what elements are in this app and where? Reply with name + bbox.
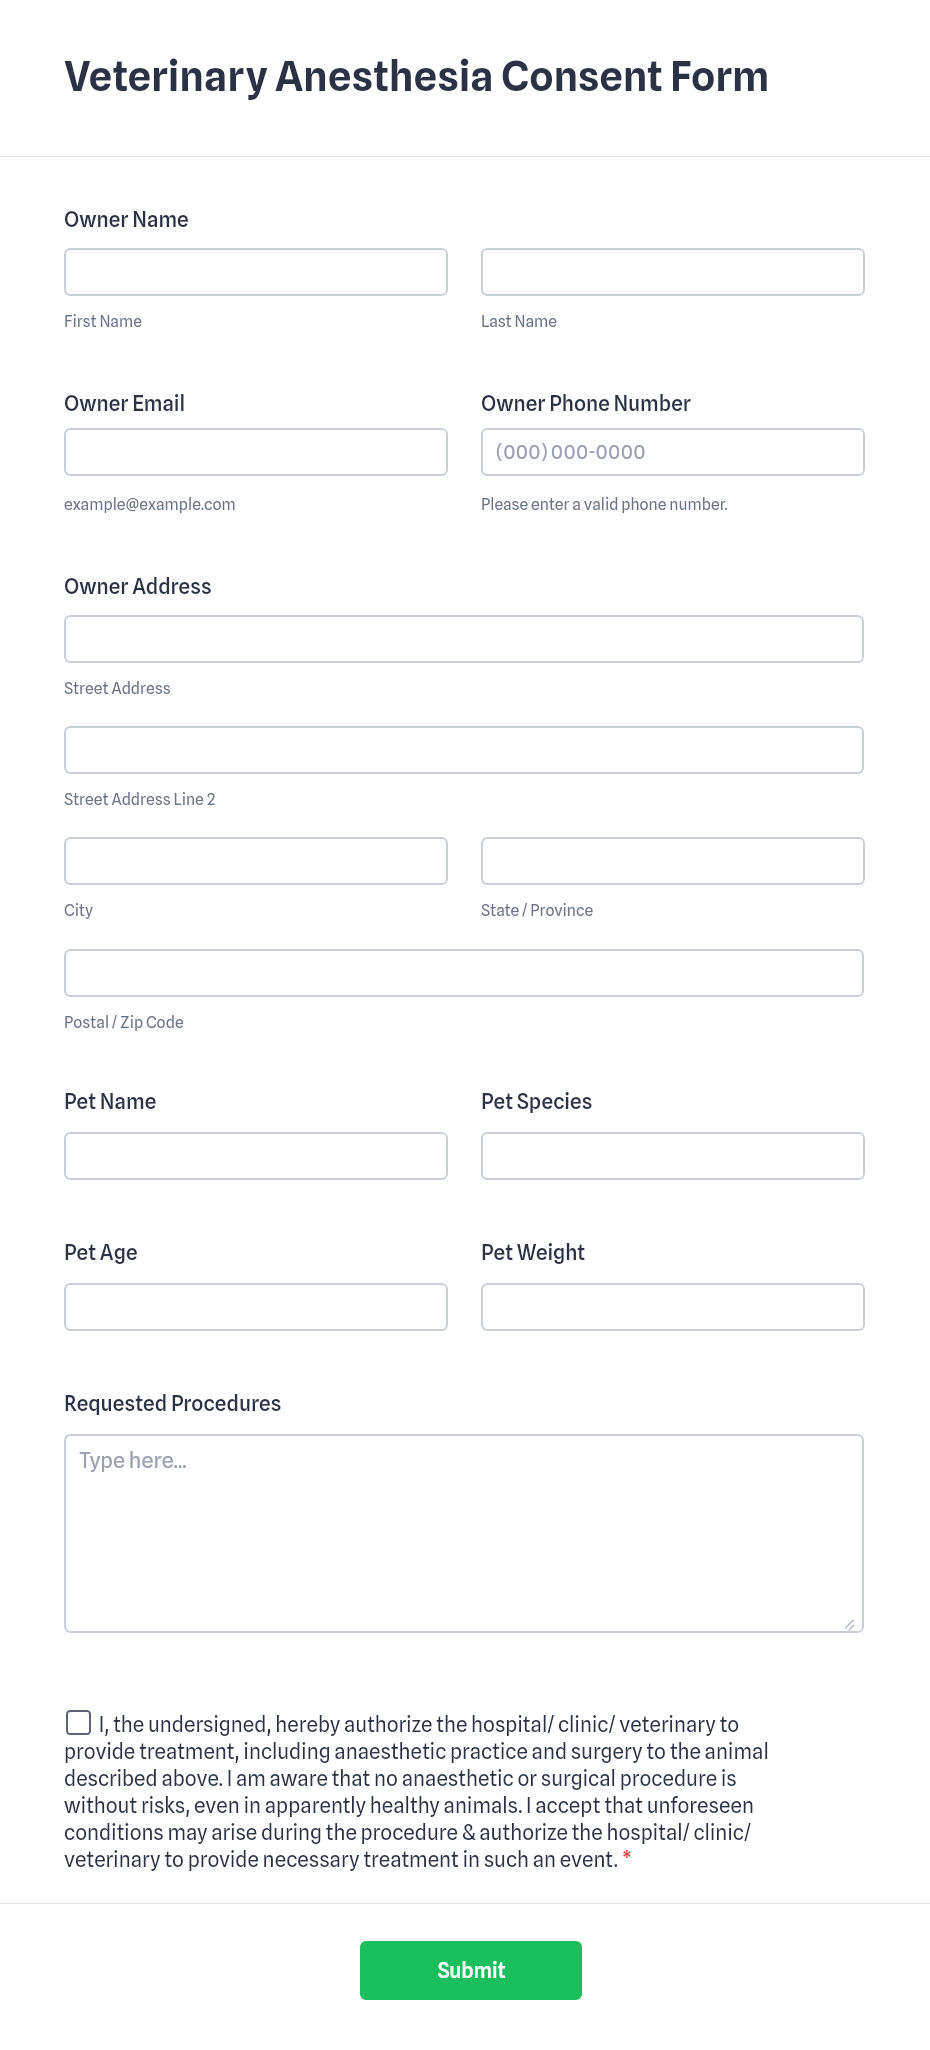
button[interactable] xyxy=(64,1283,448,1331)
staticText: Last Name xyxy=(481,312,558,331)
button[interactable] xyxy=(64,837,448,885)
button[interactable] xyxy=(64,428,448,476)
button[interactable] xyxy=(481,1283,865,1331)
staticText: Pet Weight xyxy=(481,1240,586,1265)
staticText: Pet Name xyxy=(64,1089,157,1114)
button[interactable] xyxy=(481,248,865,296)
button[interactable]: (000) 000-0000 xyxy=(481,428,865,476)
button[interactable]: Type here... xyxy=(64,1434,864,1633)
staticText: State / Province xyxy=(481,901,594,920)
staticText: Submit xyxy=(437,1958,506,1983)
staticText: Owner Phone Number xyxy=(481,391,692,416)
staticText: Street Address xyxy=(64,679,171,698)
staticText: Street Address Line 2 xyxy=(64,790,216,809)
button[interactable]: I agree checkbox xyxy=(66,1710,91,1735)
staticText: Type here... xyxy=(79,1447,187,1473)
button[interactable] xyxy=(64,1132,448,1180)
staticText: I, the undersigned, hereby authorize the… xyxy=(64,1712,794,1871)
staticText: City xyxy=(64,901,93,920)
staticText: Please enter a valid phone number. xyxy=(481,495,728,514)
button[interactable]: Submit xyxy=(360,1941,582,2000)
staticText: example@example.com xyxy=(64,495,236,514)
button[interactable] xyxy=(481,1132,865,1180)
staticText: Pet Age xyxy=(64,1240,138,1265)
staticText: Postal / Zip Code xyxy=(64,1013,184,1032)
staticText: Owner Email xyxy=(64,391,186,416)
staticText: Veterinary Anesthesia Consent Form xyxy=(64,51,770,101)
button[interactable] xyxy=(64,949,864,997)
button[interactable] xyxy=(481,837,865,885)
staticText: First Name xyxy=(64,312,142,331)
staticText: Requested Procedures xyxy=(64,1391,282,1416)
button[interactable] xyxy=(64,615,864,663)
staticText: Owner Name xyxy=(64,207,189,232)
staticText: Pet Species xyxy=(481,1089,593,1114)
staticText: (000) 000-0000 xyxy=(496,440,646,464)
button[interactable] xyxy=(64,726,864,774)
staticText: Owner Address xyxy=(64,574,212,599)
button[interactable] xyxy=(64,248,448,296)
